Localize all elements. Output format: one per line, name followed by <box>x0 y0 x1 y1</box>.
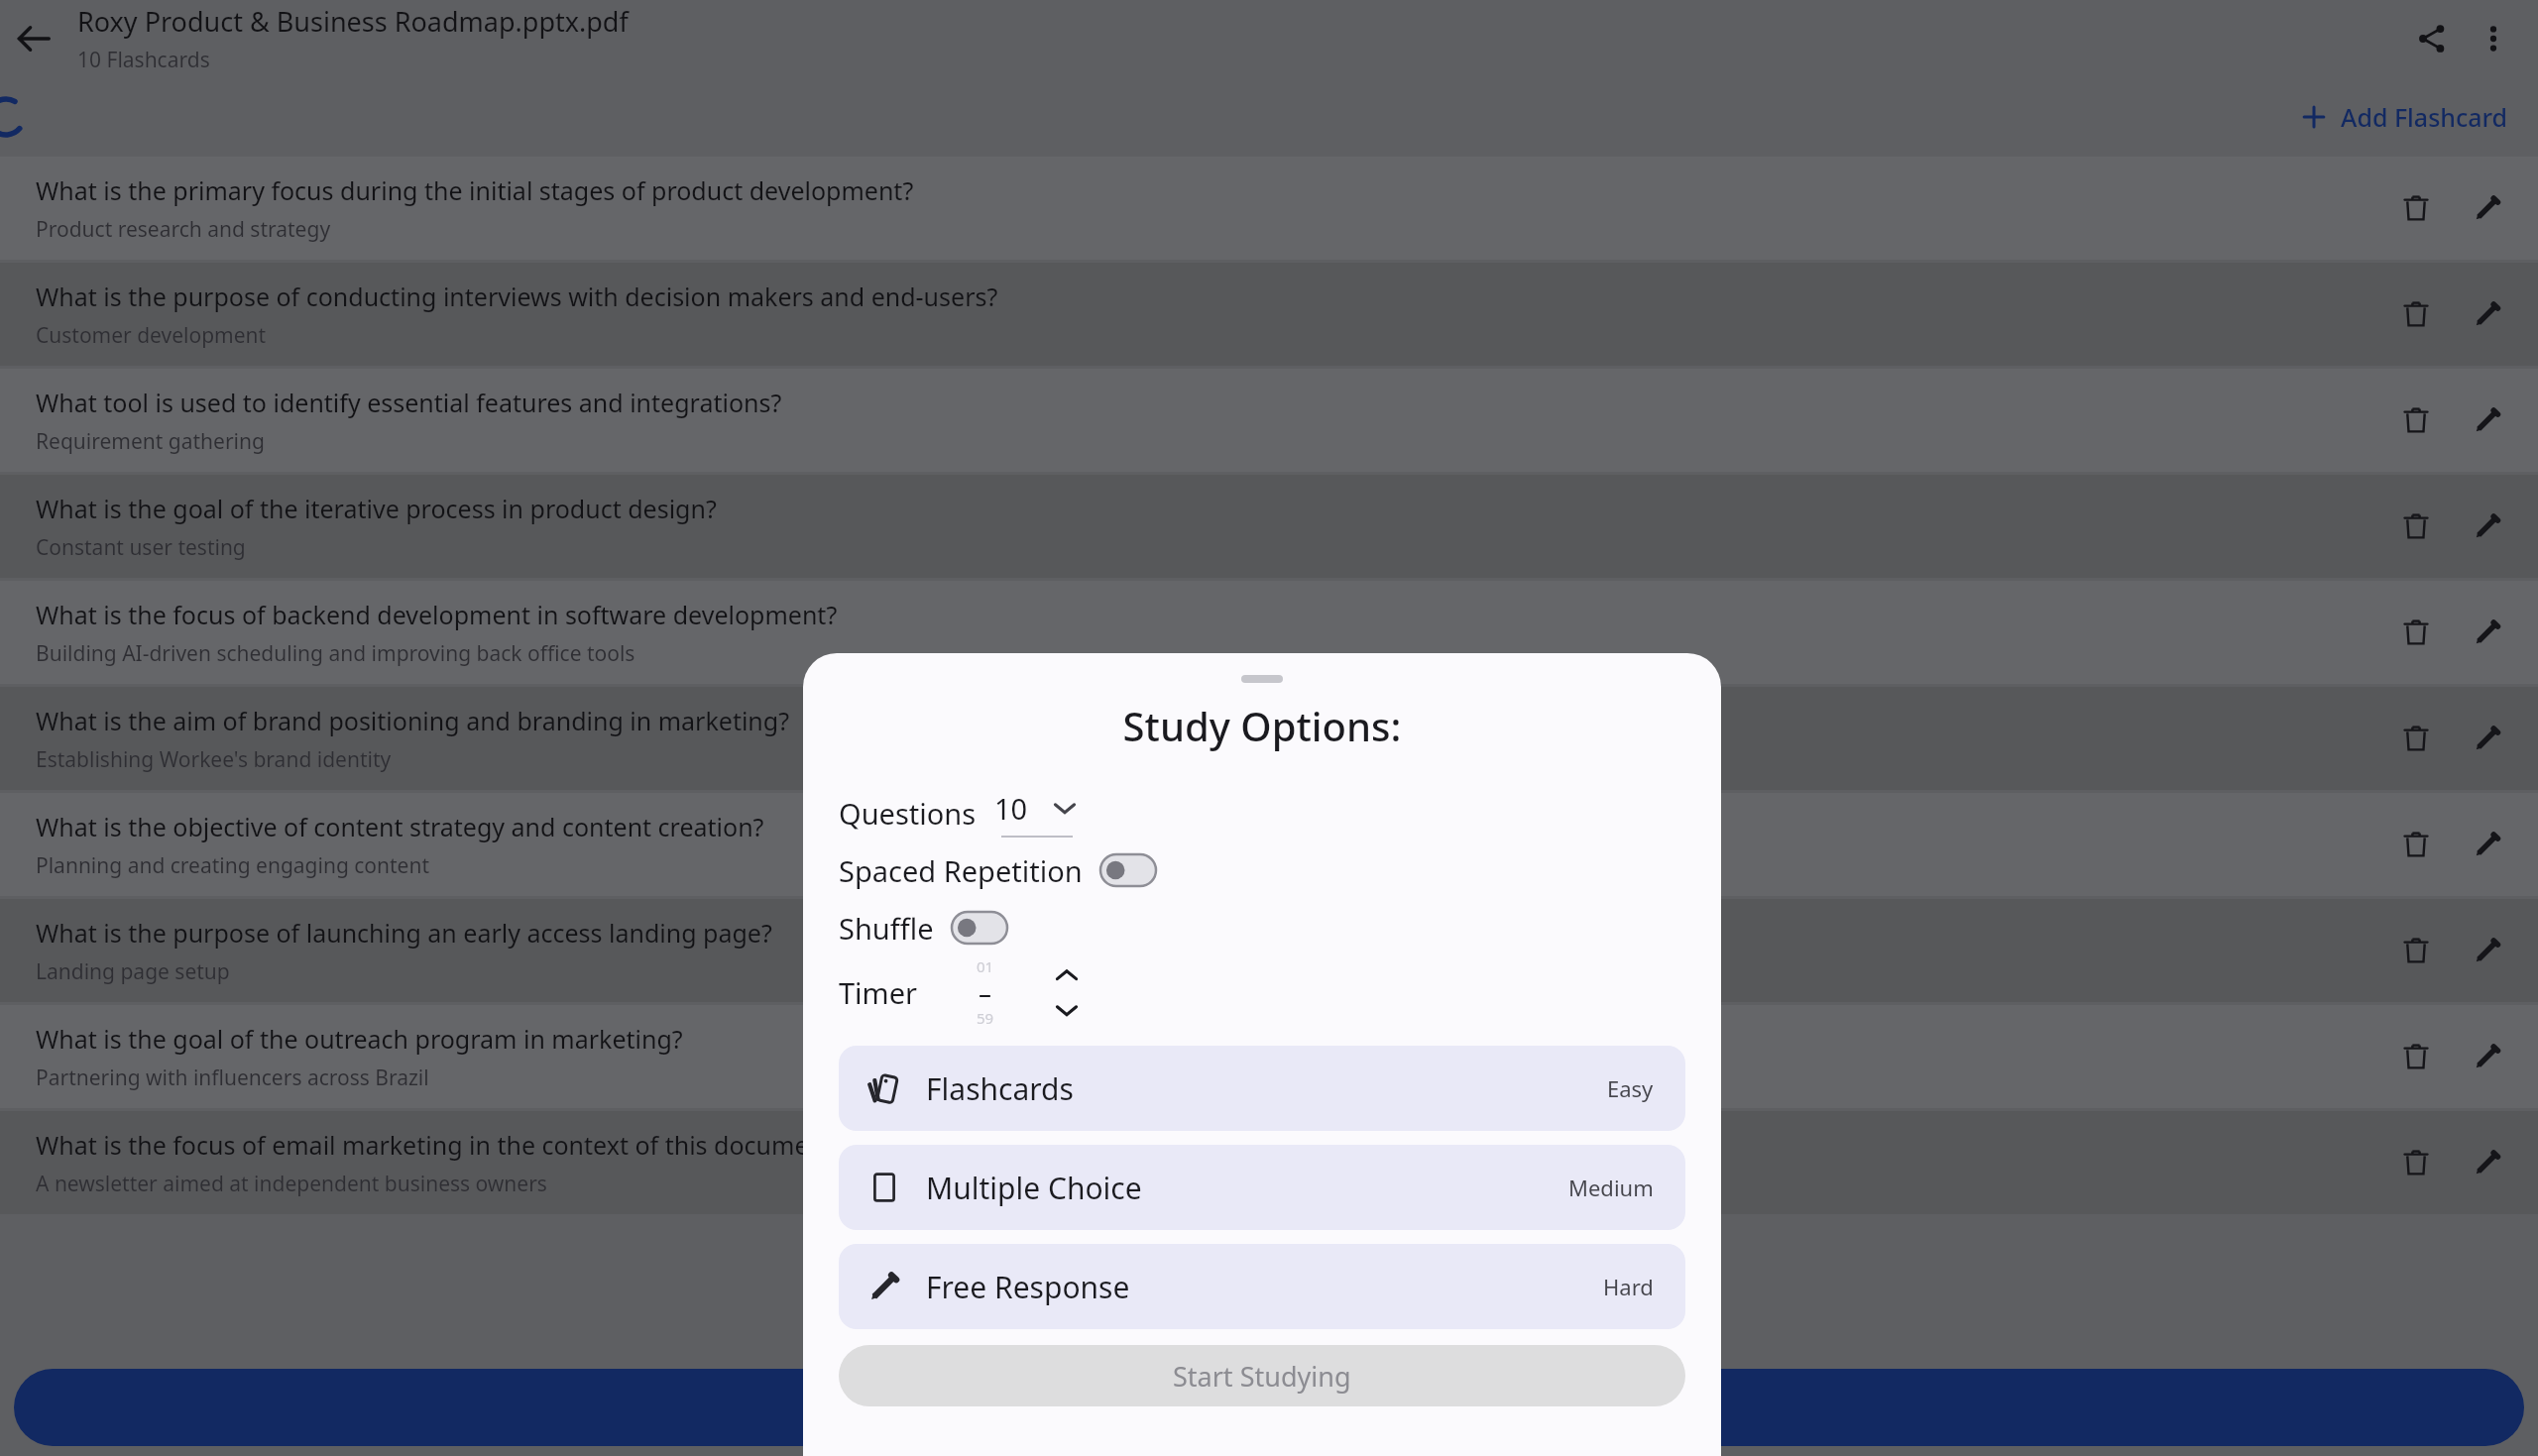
staticText: What is the primary focus during the ini… <box>36 173 914 207</box>
staticText: What is the aim of brand positioning and… <box>36 704 790 737</box>
staticText: Shuffle <box>839 909 934 948</box>
staticText: A newsletter aimed at independent busine… <box>36 1170 547 1198</box>
button[interactable]: Delete flashcard <box>2385 602 2447 663</box>
button[interactable]: What is the purpose of launching an earl… <box>0 899 2538 1002</box>
staticText: Free Response <box>926 1267 1130 1307</box>
button[interactable] <box>14 1369 2524 1446</box>
staticText: Flashcards <box>926 1068 1074 1109</box>
staticText: What is the goal of the outreach program… <box>36 1022 683 1056</box>
staticText: Add Flashcard <box>2341 100 2508 134</box>
button[interactable]: Delete flashcard <box>2385 1132 2447 1193</box>
staticText: Product research and strategy <box>36 215 331 244</box>
button[interactable]: Edit flashcard <box>2457 602 2518 663</box>
button[interactable]: What is the objective of content strateg… <box>0 793 2538 896</box>
button[interactable]: Edit flashcard <box>2457 814 2518 875</box>
button[interactable]: Add Flashcard <box>2291 92 2518 142</box>
button[interactable]: Edit flashcard <box>2457 390 2518 451</box>
button[interactable]: Multiple Choice <box>839 1145 1685 1230</box>
staticText: Roxy Product & Business Roadmap.pptx.pdf <box>77 3 629 40</box>
button[interactable]: Delete flashcard <box>2385 920 2447 981</box>
button[interactable]: Decrease timer <box>1047 999 1087 1021</box>
button[interactable]: What is the goal of the outreach program… <box>0 1005 2538 1108</box>
staticText: Spaced Repetition <box>839 851 1083 890</box>
staticText: Timer <box>839 973 918 1012</box>
staticText: 10 Flashcards <box>77 46 210 74</box>
staticText: Customer development <box>36 321 267 350</box>
staticText: 10 <box>994 789 1028 828</box>
button[interactable]: Edit flashcard <box>2457 708 2518 769</box>
staticText: What is the objective of content strateg… <box>36 810 764 843</box>
button[interactable]: Free Response <box>839 1244 1685 1329</box>
staticText: What tool is used to identify essential … <box>36 386 782 419</box>
button[interactable]: Toggle <box>1100 854 1156 886</box>
staticText: 59 <box>977 1008 994 1028</box>
button[interactable]: What is the focus of backend development… <box>0 581 2538 684</box>
button[interactable]: Delete flashcard <box>2385 814 2447 875</box>
staticText: 01 <box>977 956 994 976</box>
staticText: Study Options: <box>803 699 1721 752</box>
button[interactable]: Delete flashcard <box>2385 496 2447 557</box>
button[interactable]: What is the focus of email marketing in … <box>0 1111 2538 1214</box>
staticText: Planning and creating engaging content <box>36 851 430 880</box>
staticText: Landing page setup <box>36 957 230 986</box>
staticText: What is the purpose of conducting interv… <box>36 280 998 313</box>
button[interactable]: What is the goal of the iterative proces… <box>0 475 2538 578</box>
button[interactable]: Edit flashcard <box>2457 920 2518 981</box>
button[interactable]: Edit flashcard <box>2457 1026 2518 1087</box>
button[interactable]: Delete flashcard <box>2385 1026 2447 1087</box>
staticText: Requirement gathering <box>36 427 265 456</box>
staticText: Medium <box>1568 1173 1654 1202</box>
staticText: What is the focus of backend development… <box>36 598 838 631</box>
button[interactable]: Toggle <box>952 912 1007 944</box>
button[interactable]: Delete flashcard <box>2385 390 2447 451</box>
button[interactable]: Edit flashcard <box>2457 1132 2518 1193</box>
button[interactable]: Back <box>2 7 65 70</box>
button[interactable]: What is the aim of brand positioning and… <box>0 687 2538 790</box>
button[interactable]: Share <box>2401 8 2463 69</box>
staticText: Questions <box>839 794 977 833</box>
button[interactable]: What is the purpose of conducting interv… <box>0 263 2538 366</box>
staticText: Easy <box>1607 1073 1654 1103</box>
staticText: – <box>979 975 992 1010</box>
button[interactable]: Delete flashcard <box>2385 708 2447 769</box>
button[interactable]: 10 <box>994 789 1080 838</box>
button[interactable]: What is the primary focus during the ini… <box>0 157 2538 260</box>
button[interactable]: Edit flashcard <box>2457 177 2518 239</box>
staticText: What is the focus of email marketing in … <box>36 1128 844 1162</box>
button[interactable]: Delete flashcard <box>2385 177 2447 239</box>
staticText: What is the purpose of launching an earl… <box>36 916 772 950</box>
button[interactable]: Edit flashcard <box>2457 496 2518 557</box>
button[interactable]: More options <box>2463 8 2524 69</box>
button[interactable]: Increase timer <box>1047 963 1087 985</box>
staticText: Hard <box>1603 1272 1654 1301</box>
staticText: Constant user testing <box>36 533 246 562</box>
button[interactable]: Flashcards <box>839 1046 1685 1131</box>
button[interactable]: Start Studying <box>839 1345 1685 1406</box>
staticText: Building AI-driven scheduling and improv… <box>36 639 635 668</box>
staticText: Multiple Choice <box>926 1168 1142 1208</box>
staticText: Establishing Workee's brand identity <box>36 745 392 774</box>
staticText: What is the goal of the iterative proces… <box>36 492 717 525</box>
staticText: Partnering with influencers across Brazi… <box>36 1064 429 1092</box>
button[interactable]: Delete flashcard <box>2385 283 2447 345</box>
staticText: Start Studying <box>1173 1358 1351 1395</box>
button[interactable]: Edit flashcard <box>2457 283 2518 345</box>
button[interactable]: What tool is used to identify essential … <box>0 369 2538 472</box>
